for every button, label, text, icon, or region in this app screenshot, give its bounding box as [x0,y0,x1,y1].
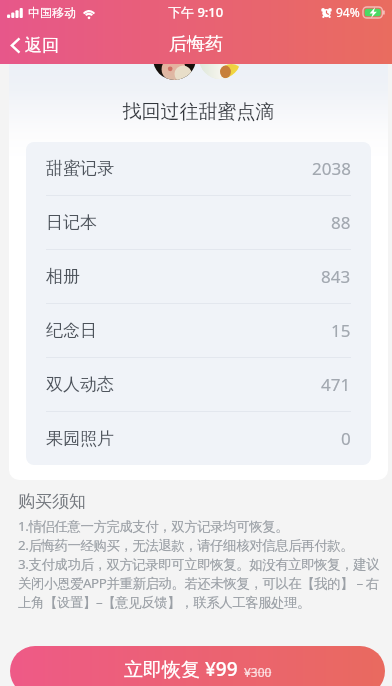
staticText: 果园照片 [46,428,114,449]
button[interactable]: 果园照片 [26,412,371,465]
button[interactable]: 返回 [0,31,69,60]
staticText: 纪念日 [46,320,97,341]
button[interactable]: 立即恢复 ¥99 [10,646,385,686]
staticText: 后悔药 [169,33,223,56]
button[interactable]: 纪念日 [26,304,371,357]
staticText: 88 [331,211,351,234]
staticText: 购买须知 [18,491,86,512]
button[interactable]: 甜蜜记录 [26,142,371,195]
button[interactable]: 相册 [26,250,371,303]
button[interactable]: 日记本 [26,196,371,249]
staticText: 下午 9:10 [168,3,224,21]
staticText: 94% [336,4,360,20]
staticText: 甜蜜记录 [46,158,114,179]
staticText: 471 [321,373,351,396]
staticText: 843 [321,265,351,288]
staticText: 找回过往甜蜜点滴 [9,100,388,124]
staticText: 2038 [312,157,351,180]
staticText: 返回 [25,35,59,56]
staticText: 日记本 [46,212,97,233]
staticText: 双人动态 [46,374,114,395]
staticText: 立即恢复 ¥99 [124,656,238,682]
staticText: ¥300 [244,664,272,680]
staticText: 中国移动 [28,5,76,20]
staticText: 15 [331,319,351,342]
button[interactable]: 双人动态 [26,358,371,411]
staticText: 相册 [46,266,80,287]
staticText: 1.情侣任意一方完成支付，双方记录均可恢复。 2.后悔药一经购买，无法退款，请仔… [18,517,380,611]
staticText: 0 [341,427,351,450]
